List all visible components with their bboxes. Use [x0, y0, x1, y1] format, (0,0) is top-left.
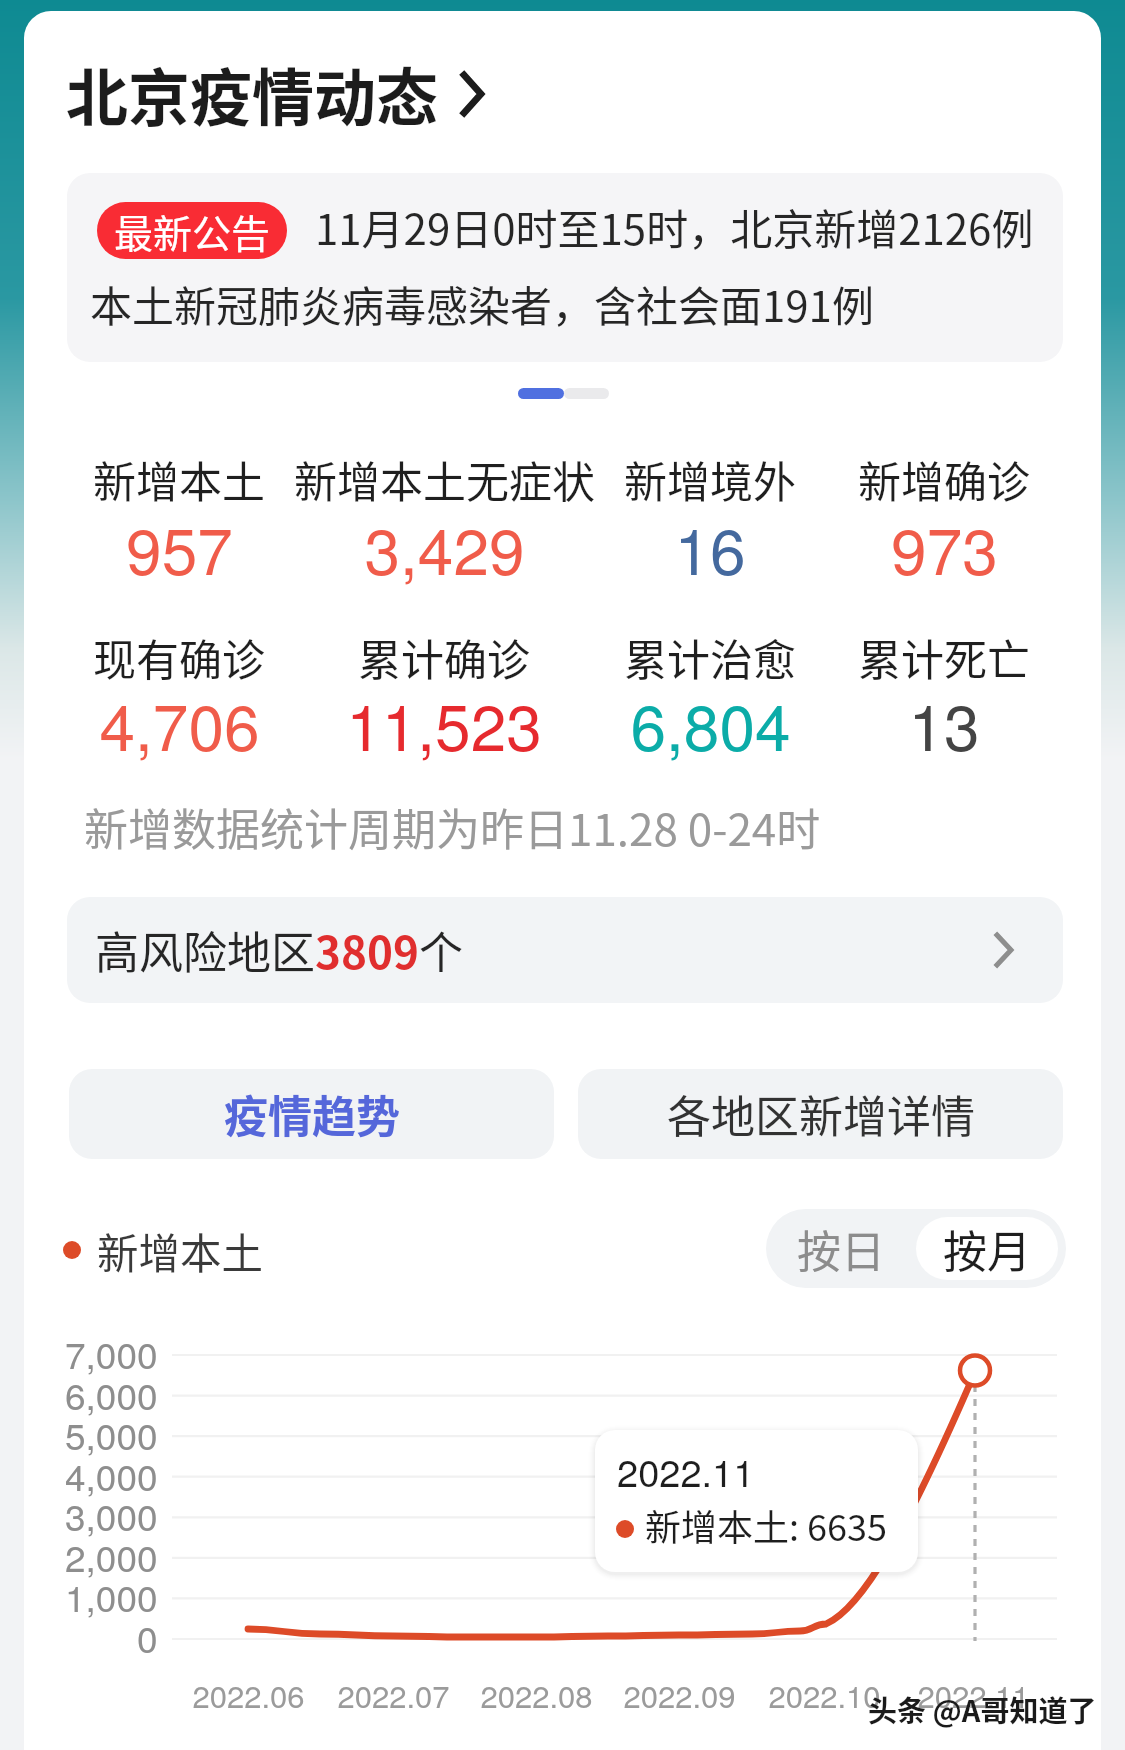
staticText: 5,000: [65, 1408, 158, 1461]
staticText: 4,000: [65, 1449, 158, 1502]
staticText: 973: [891, 502, 998, 594]
staticText: 3,000: [65, 1489, 158, 1542]
staticText: 高风险地区: [95, 918, 315, 982]
staticText: 新增境外: [624, 448, 796, 510]
button[interactable]: 北京疫情动态: [60, 45, 491, 143]
staticText: 累计确诊: [358, 626, 530, 688]
button[interactable]: 按月: [916, 1217, 1058, 1280]
staticText: 按日: [797, 1217, 885, 1281]
staticText: 3809: [315, 918, 419, 982]
staticText: 新增确诊: [858, 448, 1030, 510]
staticText: 11月29日0时至15时，北京新增2126例: [315, 196, 1034, 257]
staticText: 最新公告: [114, 203, 271, 259]
staticText: 本土新冠肺炎病毒感染者，含社会面191例: [90, 273, 874, 334]
staticText: 现有确诊: [93, 626, 265, 688]
staticText: 4,706: [99, 678, 260, 770]
staticText: 7,000: [65, 1327, 158, 1380]
staticText: 头条 @A哥知道了: [868, 1688, 1097, 1730]
staticText: 3,429: [364, 502, 525, 594]
staticText: 累计死亡: [858, 626, 1030, 688]
other: 查看高风险地区: [994, 932, 1014, 968]
staticText: 2022.07: [337, 1672, 450, 1716]
staticText: 2022.08: [480, 1672, 593, 1716]
staticText: 新增本土: [93, 448, 265, 510]
staticText: 2022.09: [623, 1672, 736, 1716]
staticText: 6,804: [630, 678, 791, 770]
staticText: 疫情趋势: [224, 1082, 400, 1146]
staticText: 2022.10: [768, 1672, 881, 1716]
button[interactable]: 各地区新增详情: [578, 1069, 1063, 1159]
staticText: 累计治愈: [624, 626, 796, 688]
staticText: 6,000: [65, 1368, 158, 1421]
staticText: 按月: [943, 1217, 1031, 1280]
staticText: 2022.06: [192, 1672, 305, 1716]
staticText: 新增本土无症状: [294, 448, 595, 510]
button[interactable]: 疫情趋势: [69, 1069, 554, 1159]
staticText: 个: [419, 918, 463, 982]
staticText: 北京疫情动态: [66, 49, 439, 139]
staticText: 13: [908, 678, 980, 770]
staticText: 16: [674, 502, 746, 594]
staticText: 1,000: [65, 1570, 158, 1623]
button[interactable]: 按日: [766, 1209, 916, 1288]
staticText: 2022.11: [617, 1443, 755, 1497]
button[interactable]: 高风险地区: [67, 897, 1063, 1003]
staticText: 0: [137, 1611, 158, 1664]
button[interactable]: 最新公告: [67, 173, 1063, 362]
staticText: 2022.11: [917, 1672, 1030, 1716]
staticText: 各地区新增详情: [667, 1082, 975, 1146]
staticText: 新增数据统计周期为昨日11.28 0-24时: [84, 795, 821, 859]
staticText: 新增本土: 6635: [645, 1499, 887, 1551]
staticText: 2,000: [65, 1530, 158, 1583]
staticText: 新增本土: [97, 1221, 264, 1281]
staticText: 957: [126, 502, 233, 594]
staticText: 11,523: [346, 678, 542, 770]
